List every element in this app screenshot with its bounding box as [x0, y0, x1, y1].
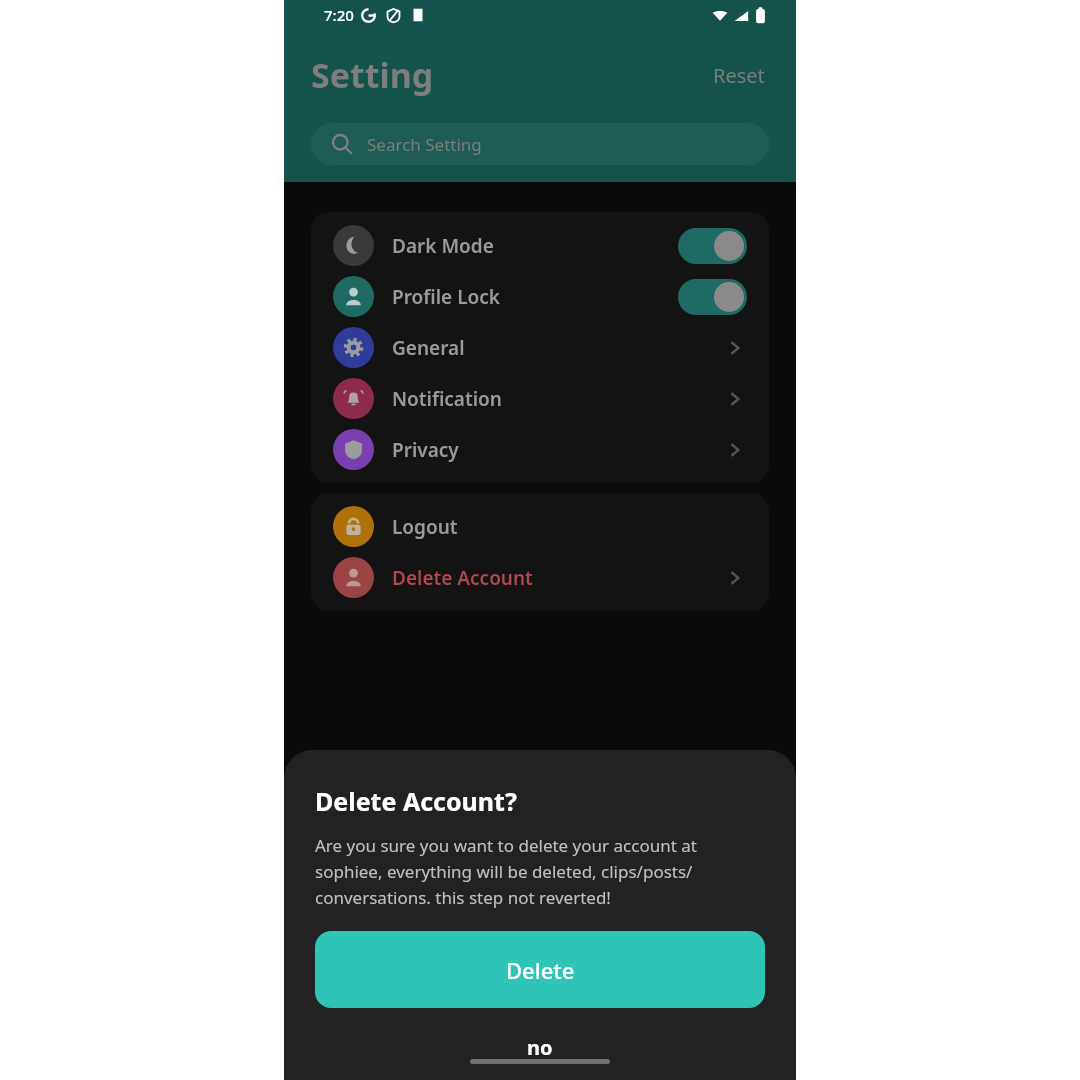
staticText: Delete [506, 955, 575, 985]
staticText: Profile Lock [392, 284, 500, 310]
staticText: 7:20 [324, 5, 354, 25]
staticText: Privacy [392, 437, 459, 463]
button[interactable]: Toggle [678, 279, 747, 315]
button[interactable]: Logout [311, 501, 769, 552]
staticText: Notification [392, 386, 502, 412]
staticText: Dark Mode [392, 233, 494, 259]
button[interactable]: Delete Account [311, 552, 769, 603]
button[interactable]: Privacy [311, 424, 769, 475]
button[interactable]: Profile Lock [311, 271, 769, 322]
button[interactable]: Toggle [678, 228, 747, 264]
staticText: Delete Account? [315, 784, 517, 818]
button[interactable]: Reset [709, 58, 769, 93]
button[interactable]: Dark Mode [311, 220, 769, 271]
staticText: Delete Account [392, 565, 533, 591]
staticText: Reset [713, 62, 765, 89]
button[interactable]: General [311, 322, 769, 373]
button[interactable]: Search Setting [311, 123, 769, 165]
staticText: Search Setting [367, 133, 482, 156]
staticText: Logout [392, 514, 458, 540]
staticText: Are you sure you want to delete your acc… [315, 834, 765, 909]
button[interactable]: Notification [311, 373, 769, 424]
staticText: Setting [311, 52, 434, 98]
button[interactable]: no [315, 1024, 765, 1070]
button[interactable]: Delete [315, 931, 765, 1008]
staticText: no [527, 1034, 553, 1061]
staticText: General [392, 335, 465, 361]
